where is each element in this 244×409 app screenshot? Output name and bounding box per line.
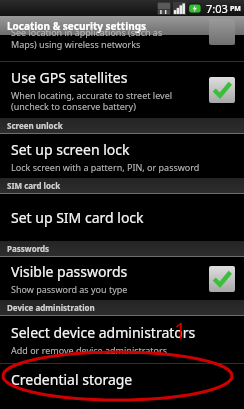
staticText: Set up screen lock: [11, 140, 130, 159]
button[interactable]: Use GPS satellites: [0, 62, 244, 118]
staticText: When locating, accurate to street level …: [11, 89, 173, 112]
staticText: Use GPS satellites: [11, 68, 128, 87]
staticText: Credential storage: [11, 370, 133, 389]
staticText: See location in applications (such as: [11, 26, 163, 38]
staticText: Passwords: [7, 243, 50, 254]
staticText: SIM card lock: [7, 180, 61, 191]
staticText: Device administration: [7, 302, 95, 313]
button[interactable]: Set up SIM card lock: [0, 194, 244, 241]
button[interactable]: See location in applications (such as: [0, 35, 244, 61]
staticText: 7:03: [206, 1, 228, 16]
staticText: Add or remove device administrators: [11, 344, 168, 356]
button[interactable]: Credential storage: [0, 364, 244, 394]
staticText: Lock screen with a pattern, PIN, or pass…: [11, 161, 200, 173]
button[interactable]: Set up screen lock: [0, 134, 244, 178]
staticText: Show password as you type: [11, 283, 128, 295]
staticText: Screen unlock: [7, 120, 63, 131]
staticText: PM: [230, 4, 241, 14]
staticText: Set up SIM card lock: [11, 208, 144, 227]
staticText: Location & security settings: [7, 19, 147, 33]
button[interactable]: Select device administrators: [0, 316, 244, 363]
staticText: Select device administrators: [11, 323, 196, 342]
staticText: 1: [174, 315, 187, 345]
staticText: Maps) using wireless networks: [11, 38, 141, 50]
button[interactable]: Visible passwords: [0, 257, 244, 300]
staticText: Visible passwords: [11, 262, 128, 281]
